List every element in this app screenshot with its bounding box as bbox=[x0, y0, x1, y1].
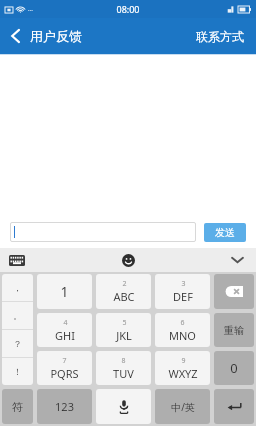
button[interactable]: Hide keyboard bbox=[226, 249, 248, 271]
button[interactable] bbox=[10, 222, 196, 242]
button[interactable]: Emoji bbox=[117, 249, 139, 271]
staticText: 3 bbox=[181, 279, 186, 289]
button[interactable]: 。 bbox=[2, 302, 33, 329]
staticText: MNO bbox=[169, 328, 196, 343]
button[interactable]: Enter bbox=[214, 389, 254, 424]
button[interactable]: 5 bbox=[96, 313, 151, 347]
staticText: PQRS bbox=[50, 366, 79, 381]
button[interactable]: 符 bbox=[2, 389, 33, 424]
staticText: 5 bbox=[122, 318, 127, 328]
staticText: 6 bbox=[180, 318, 185, 328]
staticText: GHI bbox=[55, 328, 75, 343]
staticText: ， bbox=[13, 282, 22, 293]
staticText: 2 bbox=[122, 279, 127, 289]
staticText: ABC bbox=[113, 289, 135, 304]
staticText: 4 bbox=[63, 318, 68, 328]
staticText: 123 bbox=[55, 399, 74, 414]
staticText: TUV bbox=[113, 366, 134, 381]
button[interactable]: 2 bbox=[96, 274, 151, 309]
button[interactable]: ， bbox=[2, 274, 33, 301]
button[interactable]: Back bbox=[0, 18, 90, 54]
button[interactable]: 8 bbox=[96, 351, 151, 385]
staticText: 08:00 bbox=[116, 3, 140, 15]
staticText: 用户反馈 bbox=[30, 28, 82, 44]
button[interactable]: 0 bbox=[214, 351, 254, 385]
staticText: ！ bbox=[13, 366, 22, 377]
button[interactable]: 3 bbox=[155, 274, 210, 309]
staticText: 8 bbox=[121, 356, 126, 366]
staticText: 中/英 bbox=[171, 400, 195, 414]
staticText: 重输 bbox=[224, 324, 244, 337]
staticText: 0 bbox=[230, 359, 238, 377]
button[interactable]: 4 bbox=[37, 313, 92, 347]
button[interactable]: ！ bbox=[2, 358, 33, 385]
staticText: 1 bbox=[60, 282, 69, 301]
staticText: WXYZ bbox=[168, 366, 198, 381]
button[interactable]: 中/英 bbox=[155, 389, 210, 424]
staticText: 发送 bbox=[215, 226, 235, 239]
button[interactable]: 6 bbox=[155, 313, 210, 347]
button[interactable]: Keyboard bbox=[6, 249, 28, 271]
staticText: JKL bbox=[116, 328, 132, 343]
button[interactable]: 联系方式 bbox=[184, 18, 256, 54]
button[interactable]: Delete bbox=[214, 274, 254, 309]
button[interactable]: 发送 bbox=[204, 223, 246, 242]
staticText: 联系方式 bbox=[196, 29, 244, 44]
button[interactable]: 123 bbox=[37, 389, 92, 424]
button[interactable]: 1 bbox=[37, 274, 92, 309]
staticText: 7 bbox=[62, 356, 67, 366]
staticText: 符 bbox=[12, 400, 23, 414]
button[interactable]: 重输 bbox=[214, 313, 254, 347]
button[interactable]: ？ bbox=[2, 330, 33, 357]
staticText: ？ bbox=[13, 338, 22, 349]
staticText: 。 bbox=[13, 310, 22, 321]
staticText: 9 bbox=[181, 356, 186, 366]
staticText: ··· bbox=[28, 6, 33, 14]
button[interactable]: Voice input bbox=[96, 389, 151, 424]
staticText: DEF bbox=[173, 289, 193, 304]
other: Back bbox=[10, 27, 21, 45]
button[interactable]: 9 bbox=[155, 351, 210, 385]
button[interactable]: 7 bbox=[37, 351, 92, 385]
